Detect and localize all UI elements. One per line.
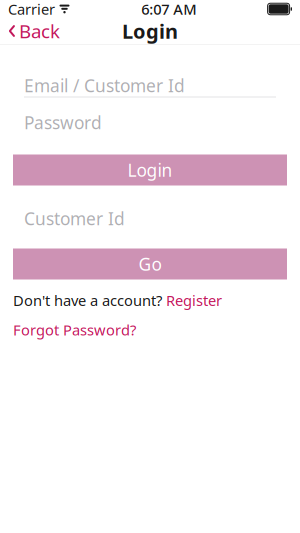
staticText: Login (122, 18, 178, 44)
button[interactable]: Register (166, 290, 222, 310)
staticText: Forgot Password? (13, 320, 136, 339)
button[interactable]: Go (13, 248, 287, 279)
button[interactable]: Forgot Password? (13, 320, 136, 339)
staticText: Password (24, 111, 102, 134)
staticText: Email / Customer Id (24, 74, 185, 97)
button[interactable]: Login (13, 154, 287, 185)
staticText: Don't have a account? (13, 290, 166, 310)
staticText: 6:07 AM (141, 0, 196, 19)
staticText: Customer Id (24, 207, 125, 230)
staticText: Register (166, 290, 222, 310)
staticText: Back (19, 19, 60, 43)
button[interactable]: Back (0, 15, 60, 47)
staticText: Carrier (8, 0, 55, 19)
staticText: Login (127, 158, 172, 181)
staticText: Go (138, 252, 161, 275)
